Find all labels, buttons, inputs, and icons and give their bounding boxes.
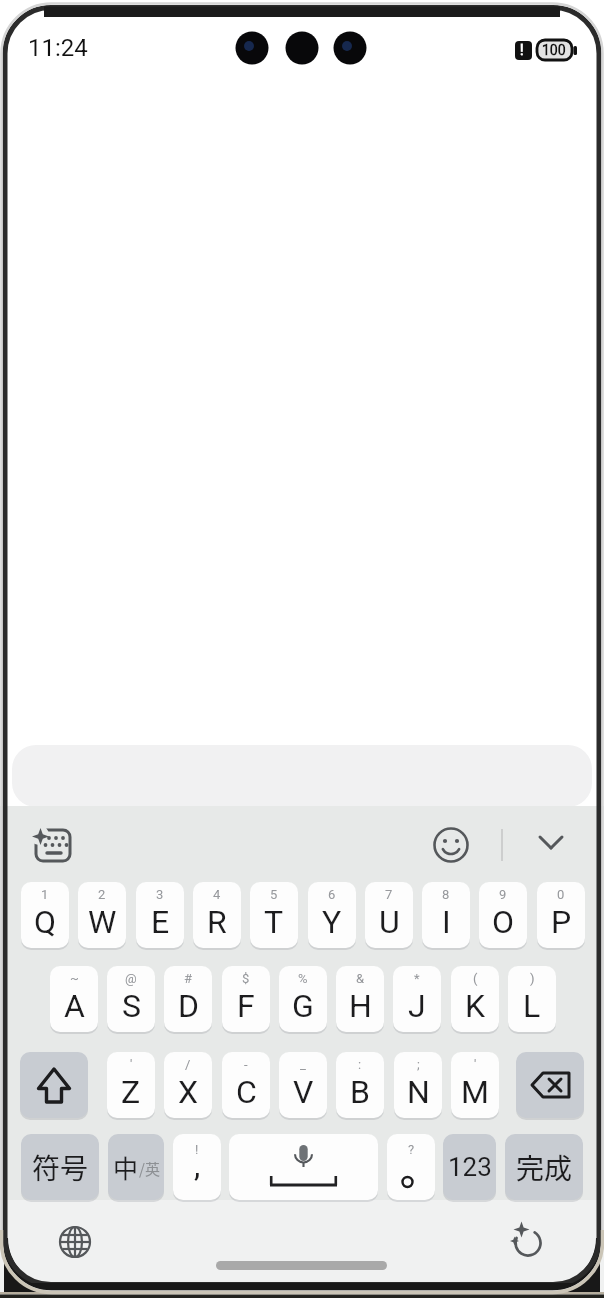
button[interactable]: 7	[365, 882, 413, 948]
button[interactable]: 3	[136, 882, 184, 948]
staticText: P	[551, 903, 572, 941]
staticText: U	[379, 903, 400, 941]
button[interactable]	[430, 824, 472, 866]
button[interactable]: %	[279, 966, 327, 1032]
button[interactable]	[229, 1134, 378, 1200]
button[interactable]: 完成	[505, 1134, 583, 1200]
staticText: ;	[417, 1057, 420, 1072]
button[interactable]: ~	[50, 966, 98, 1032]
staticText: 4	[213, 887, 221, 902]
button[interactable]	[28, 822, 78, 868]
staticText: F	[237, 987, 255, 1025]
staticText: Q	[34, 903, 57, 941]
staticText: 符号	[32, 1147, 89, 1188]
button[interactable]: 5	[250, 882, 298, 948]
button[interactable]: )	[508, 966, 556, 1032]
staticText: K	[465, 987, 486, 1025]
staticText: !	[195, 1142, 199, 1157]
button[interactable]: !	[173, 1134, 221, 1200]
staticText: ~	[70, 971, 79, 986]
button[interactable]	[20, 1052, 88, 1118]
staticText: 123	[448, 1152, 492, 1182]
staticText: #	[184, 971, 193, 986]
staticText: '	[130, 1057, 133, 1072]
staticText: ,	[194, 1146, 201, 1184]
staticText: B	[350, 1073, 370, 1111]
button[interactable]	[505, 1220, 551, 1266]
staticText: /	[185, 1057, 191, 1072]
staticText: !	[520, 42, 524, 58]
staticText: H	[349, 987, 372, 1025]
button[interactable]: (	[451, 966, 499, 1032]
staticText: T	[264, 903, 284, 941]
staticText: G	[292, 987, 314, 1025]
staticText: -	[244, 1057, 248, 1072]
staticText: ?	[408, 1142, 415, 1157]
staticText: I	[442, 903, 451, 941]
staticText: _	[300, 1057, 306, 1072]
button[interactable]: 4	[193, 882, 241, 948]
staticText: '	[474, 1057, 477, 1072]
staticText: X	[178, 1073, 199, 1111]
button[interactable]	[55, 1222, 95, 1262]
staticText: (	[473, 971, 478, 986]
button[interactable]: -	[222, 1052, 270, 1118]
button[interactable]: :	[336, 1052, 384, 1118]
staticText: E	[151, 903, 170, 941]
button[interactable]: 8	[422, 882, 470, 948]
staticText: 完成	[516, 1147, 573, 1188]
staticText: V	[293, 1073, 314, 1111]
staticText: 9	[499, 887, 507, 902]
button[interactable]: &	[336, 966, 384, 1032]
staticText: J	[408, 987, 426, 1025]
staticText: O	[492, 903, 515, 941]
staticText: 6	[328, 887, 336, 902]
staticText: 2	[98, 887, 106, 902]
button[interactable]: *	[393, 966, 441, 1032]
button[interactable]: $	[222, 966, 270, 1032]
staticText: A	[64, 987, 85, 1025]
button[interactable]: ;	[394, 1052, 442, 1118]
staticText: @	[125, 971, 137, 986]
staticText: D	[178, 987, 199, 1025]
staticText: R	[207, 903, 227, 941]
button[interactable]: 1	[21, 882, 69, 948]
button[interactable]: '	[451, 1052, 499, 1118]
staticText: :	[358, 1057, 362, 1072]
staticText: S	[122, 987, 141, 1025]
staticText: Y	[322, 903, 342, 941]
button[interactable]: 123	[443, 1134, 496, 1200]
staticText: C	[236, 1073, 257, 1111]
button[interactable]: 2	[78, 882, 126, 948]
button[interactable]: ?	[387, 1134, 435, 1200]
button[interactable]: @	[107, 966, 155, 1032]
staticText: 8	[442, 887, 450, 902]
staticText: $	[242, 971, 250, 986]
button[interactable]: 符号	[21, 1134, 99, 1200]
button[interactable]: 6	[308, 882, 356, 948]
staticText: M	[461, 1073, 489, 1111]
button[interactable]	[530, 826, 572, 864]
staticText: N	[407, 1073, 430, 1111]
staticText: 5	[270, 887, 278, 902]
staticText: 11:24	[28, 34, 88, 62]
staticText: %	[298, 971, 308, 986]
button[interactable]: /	[164, 1052, 212, 1118]
staticText: 100	[542, 42, 566, 58]
button[interactable]: 9	[479, 882, 527, 948]
staticText: 1	[41, 887, 49, 902]
button[interactable]	[516, 1052, 584, 1118]
staticText: Z	[121, 1073, 141, 1111]
staticText: )	[530, 971, 535, 986]
staticText: 3	[156, 887, 164, 902]
staticText: 7	[385, 887, 393, 902]
staticText: 0	[557, 887, 565, 902]
staticText: *	[414, 971, 420, 986]
button[interactable]: 0	[537, 882, 585, 948]
button[interactable]: _	[279, 1052, 327, 1118]
button[interactable]: '	[107, 1052, 155, 1118]
button[interactable]: 中	[108, 1134, 164, 1200]
staticText: &	[356, 971, 365, 986]
button[interactable]: #	[164, 966, 212, 1032]
